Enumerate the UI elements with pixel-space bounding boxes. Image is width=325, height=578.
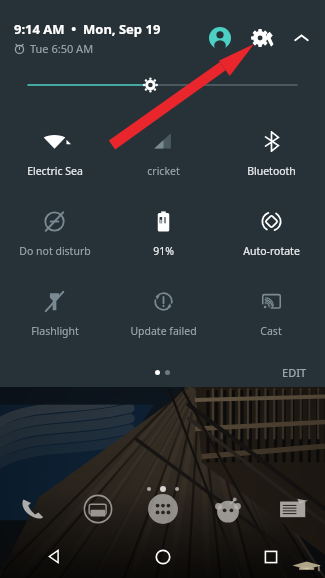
staticText: cricket bbox=[147, 164, 180, 178]
button[interactable]: Flashlight bbox=[0, 274, 109, 354]
button[interactable]: All apps bbox=[130, 483, 195, 535]
button[interactable]: Phone bbox=[0, 483, 65, 535]
button[interactable]: 91% bbox=[109, 194, 217, 274]
button[interactable]: Camera beta bbox=[65, 483, 130, 535]
button[interactable]: Home bbox=[109, 535, 217, 578]
button[interactable]: Bluetooth bbox=[217, 114, 325, 194]
button[interactable]: Collapse bbox=[287, 24, 315, 52]
button[interactable]: Auto-rotate bbox=[217, 194, 325, 274]
staticText: 9:14 AM • Mon, Sep 19 bbox=[14, 20, 161, 38]
button[interactable]: Settings bbox=[247, 23, 277, 53]
button[interactable]: User profile bbox=[205, 23, 235, 53]
button[interactable]: News bbox=[260, 483, 325, 535]
button[interactable]: Brightness bbox=[0, 72, 325, 98]
button[interactable]: Back bbox=[0, 535, 109, 578]
button[interactable]: Cast bbox=[217, 274, 325, 354]
staticText: EDIT bbox=[282, 365, 307, 380]
staticText: Electric Sea bbox=[27, 164, 83, 178]
staticText: Do not disturb bbox=[19, 244, 91, 258]
staticText: Cast bbox=[260, 324, 282, 338]
button[interactable]: Update failed bbox=[109, 274, 217, 354]
button[interactable]: Electric Sea bbox=[0, 114, 109, 194]
staticText: 91% bbox=[153, 244, 174, 258]
staticText: Bluetooth bbox=[247, 164, 296, 178]
button[interactable]: EDIT bbox=[278, 362, 311, 383]
button[interactable]: Reddit bbox=[195, 483, 260, 535]
staticText: Flashlight bbox=[31, 324, 79, 338]
button[interactable]: Recent apps bbox=[217, 535, 325, 578]
staticText: Auto-rotate bbox=[243, 244, 300, 258]
button[interactable]: cricket bbox=[109, 114, 217, 194]
staticText: Update failed bbox=[130, 324, 197, 338]
button[interactable]: Do not disturb bbox=[0, 194, 109, 274]
staticText: Tue 6:50 AM bbox=[30, 41, 94, 56]
